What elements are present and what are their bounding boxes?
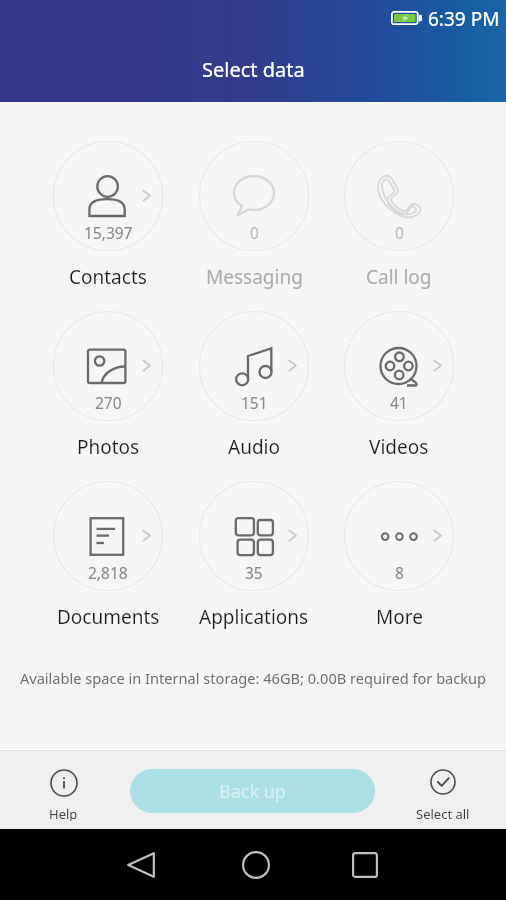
- staticText: Audio: [228, 434, 280, 460]
- button[interactable]: Recent apps: [329, 839, 401, 891]
- staticText: Photos: [77, 434, 140, 460]
- staticText: 2,818: [88, 562, 128, 583]
- staticText: Applications: [199, 604, 309, 630]
- button[interactable]: 2,818: [53, 481, 163, 630]
- staticText: Videos: [369, 434, 429, 460]
- button[interactable]: Home: [220, 839, 292, 891]
- button[interactable]: 15,397: [53, 141, 163, 290]
- button[interactable]: 0: [344, 141, 454, 290]
- staticText: Back up: [219, 779, 286, 804]
- button[interactable]: 270: [53, 311, 163, 460]
- staticText: Help: [49, 805, 78, 821]
- staticText: 270: [95, 392, 122, 413]
- button[interactable]: 35: [199, 481, 309, 630]
- button[interactable]: Select all: [401, 761, 485, 821]
- staticText: 0: [250, 222, 259, 243]
- staticText: 6:39 PM: [428, 6, 500, 32]
- staticText: Messaging: [206, 264, 303, 290]
- button[interactable]: 8: [344, 481, 454, 630]
- staticText: Call log: [366, 264, 432, 290]
- button[interactable]: Help: [22, 761, 105, 821]
- button[interactable]: 151: [199, 311, 309, 460]
- button[interactable]: Back up: [130, 769, 375, 813]
- staticText: Select all: [416, 805, 470, 821]
- button[interactable]: 41: [344, 311, 454, 460]
- staticText: Select data: [202, 56, 305, 83]
- staticText: Contacts: [69, 264, 147, 290]
- staticText: Documents: [57, 604, 160, 630]
- button[interactable]: Back: [105, 839, 177, 891]
- staticText: More: [376, 604, 423, 630]
- staticText: Available space in Internal storage: 46G…: [0, 668, 506, 688]
- staticText: 151: [241, 392, 268, 413]
- button[interactable]: 0: [199, 141, 309, 290]
- staticText: 15,397: [84, 222, 133, 243]
- staticText: 8: [395, 562, 404, 583]
- staticText: 0: [395, 222, 404, 243]
- staticText: 35: [245, 562, 263, 583]
- staticText: 41: [390, 392, 408, 413]
